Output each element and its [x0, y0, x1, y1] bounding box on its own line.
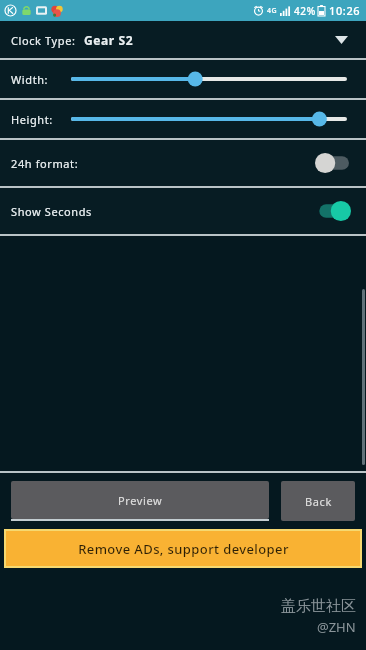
- staticText: Width:: [11, 72, 49, 87]
- staticText: Back: [305, 494, 332, 509]
- staticText: Height:: [11, 112, 53, 127]
- button[interactable]: Back: [281, 481, 355, 521]
- button[interactable]: Clock Type:: [0, 21, 366, 58]
- button[interactable]: Remove ADs, support developer: [4, 529, 362, 568]
- staticText: Show Seconds: [11, 204, 92, 219]
- button[interactable]: Show Seconds: [0, 188, 366, 234]
- staticText: Gear S2: [84, 32, 134, 48]
- staticText: 盖乐世社区: [281, 597, 356, 616]
- button[interactable]: Preview: [11, 481, 269, 521]
- staticText: 10:26: [329, 3, 361, 18]
- button[interactable]: [71, 65, 347, 93]
- staticText: Preview: [118, 493, 163, 508]
- staticText: 24h format:: [11, 156, 79, 171]
- button[interactable]: [71, 105, 347, 133]
- staticText: 4G: [267, 6, 278, 16]
- staticText: @ZHN: [317, 618, 356, 636]
- staticText: 42%: [294, 4, 316, 18]
- button[interactable]: 24h format:: [0, 140, 366, 186]
- staticText: Clock Type:: [11, 33, 76, 48]
- staticText: Remove ADs, support developer: [78, 540, 289, 558]
